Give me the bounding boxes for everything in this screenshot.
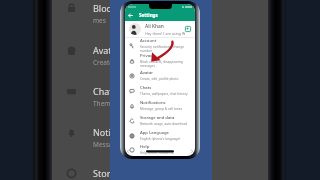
button[interactable]: Notifications [52,126,268,156]
button[interactable]: Storage and data [125,113,195,128]
button[interactable]: Avatar [125,68,195,83]
staticText: Settings [139,12,158,18]
staticText: Privacy [140,53,155,59]
staticText: Notifications [140,100,166,106]
staticText: Chats [140,85,152,91]
button[interactable]: Notifications [125,98,195,113]
button[interactable]: Chats [52,85,268,115]
staticText: Avatar [93,44,121,56]
staticText: Network usage, auto-download [140,122,188,126]
staticText: mes [93,16,106,25]
staticText: Message, group & call tones [93,140,180,149]
staticText: Theme, wallpapers, chat history [140,92,188,96]
button[interactable]: App Language [125,128,195,143]
staticText: Theme, wallpapers, chat history [93,99,191,108]
staticText: Create, edit, profile photo [140,77,179,81]
staticText: Help [140,144,150,150]
button[interactable]: Storage and data [52,167,268,180]
staticText: English (phone's language) [140,137,181,141]
button[interactable]: Help [125,143,195,156]
staticText: Account [140,38,157,44]
staticText: App Language [140,130,169,136]
staticText: Security notifications, change number [140,45,192,53]
staticText: Bloc [93,2,111,14]
button[interactable]: Chats [125,83,195,98]
staticText: Storage and data [140,115,175,121]
button[interactable]: Avatar [52,44,268,74]
staticText: Chats [93,85,117,97]
staticText: Notifications [93,126,147,138]
staticText: Hey there! I am using WhatsApp. [145,31,185,36]
staticText: Create, edit, profile photo [93,58,172,67]
staticText: Block contacts, disappearing messages [140,60,192,68]
staticText: Storage and data [93,167,166,179]
button[interactable]: Account [125,38,195,53]
button[interactable]: Privacy [125,53,195,68]
staticText: Avatar [140,70,154,76]
button[interactable]: Bloc [52,2,268,32]
staticText: Message, group & call tones [140,107,183,111]
button[interactable]: QR code [185,26,191,32]
staticText: Ali Khan [145,23,164,30]
button[interactable]: Ali Khan [125,21,195,37]
staticText: Help center, contact us [140,151,174,155]
button[interactable]: Back [128,13,133,18]
